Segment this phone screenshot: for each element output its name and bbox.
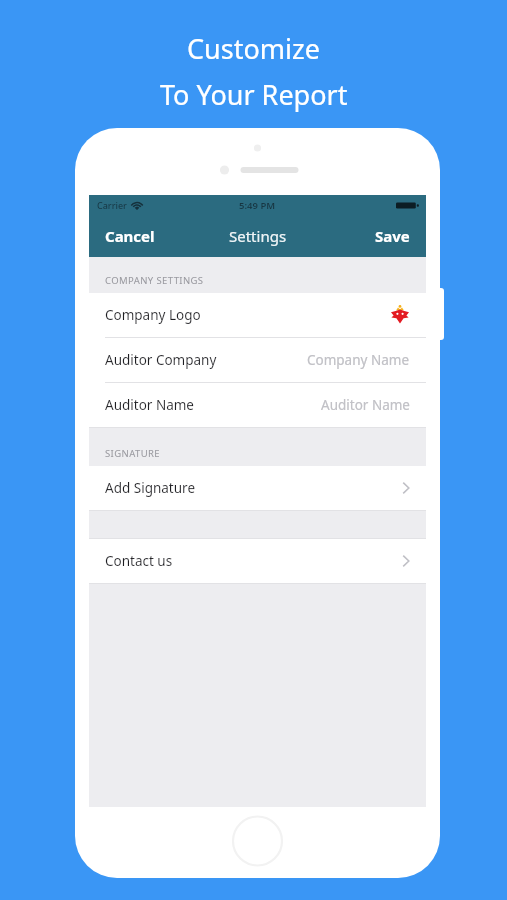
button[interactable]: Cancel	[89, 218, 171, 254]
button[interactable]: Contact us	[89, 539, 426, 583]
staticText: Save	[375, 226, 410, 246]
staticText: Auditor Name	[105, 396, 194, 414]
other: Open	[402, 554, 410, 568]
staticText: Cancel	[105, 226, 155, 246]
staticText: SIGNATURE	[105, 447, 160, 460]
other: Company logo	[390, 305, 410, 325]
button[interactable]: Auditor Name	[89, 383, 426, 427]
staticText: Auditor Company	[105, 351, 217, 369]
other: Open	[402, 481, 410, 495]
staticText: COMPANY SETTINGS	[105, 274, 204, 287]
button[interactable]: Save	[359, 218, 426, 254]
staticText: Company Logo	[105, 306, 201, 324]
staticText: Settings	[229, 226, 287, 246]
staticText: Auditor Name	[321, 396, 410, 414]
staticText: Customize	[187, 30, 320, 67]
staticText: Add Signature	[105, 479, 195, 497]
staticText: Company Name	[307, 351, 410, 369]
staticText: Carrier	[97, 199, 127, 211]
staticText: To Your Report	[160, 76, 348, 113]
staticText: Contact us	[105, 552, 173, 570]
button[interactable]: Add Signature	[89, 466, 426, 510]
staticText: 5:49 PM	[239, 199, 276, 212]
button[interactable]: Auditor Company	[89, 338, 426, 382]
button[interactable]: Company Logo	[89, 293, 426, 337]
